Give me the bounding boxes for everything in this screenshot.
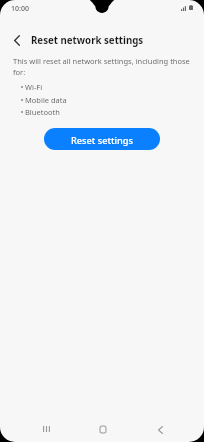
button[interactable]: Home [91,417,115,441]
staticText: This will reset all network settings, in… [13,56,191,77]
staticText: 10:00 [11,4,29,14]
button[interactable]: Reset settings [44,128,160,150]
button[interactable]: Navigate up [4,28,29,53]
staticText: Reset network settings [31,34,144,47]
button[interactable]: Back [148,418,172,442]
button[interactable]: Recent apps [34,417,58,441]
staticText: Mobile data [25,95,67,105]
staticText: Bluetooth [25,107,60,117]
staticText: Wi-Fi [25,82,43,92]
staticText: Reset settings [71,134,133,147]
